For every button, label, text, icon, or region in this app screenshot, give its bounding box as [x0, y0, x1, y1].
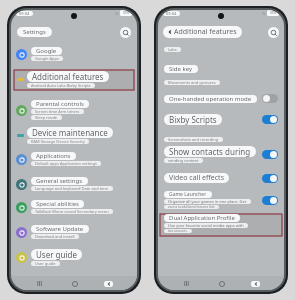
button[interactable]: Settings	[17, 27, 52, 37]
staticText: 09:04	[19, 11, 30, 16]
staticText: Video call effects	[169, 173, 224, 183]
button[interactable]: Switch on	[262, 115, 278, 124]
staticText: User guide	[36, 249, 77, 260]
button[interactable]: Switch off	[262, 94, 278, 103]
staticText: Settings	[23, 28, 46, 36]
button[interactable]: One-handed operation mode	[164, 94, 278, 103]
staticText: Movements and gestures	[168, 80, 216, 85]
staticText: 93%	[123, 11, 129, 15]
button[interactable]: Switch on	[262, 150, 278, 159]
button[interactable]: Switch on	[262, 174, 278, 183]
staticText: Language and keyboard Date and time	[35, 186, 109, 191]
staticText: Additional features	[32, 71, 104, 82]
staticText: 93%	[270, 11, 276, 15]
staticText: Android Auto Labs Bixby Scripts	[31, 83, 91, 88]
staticText: Side key	[169, 65, 193, 73]
staticText: %	[115, 11, 119, 16]
staticText: Default apps Application settings	[35, 161, 97, 166]
button[interactable]: Additional features	[163, 26, 242, 38]
staticText: Dual Application Profile	[169, 214, 235, 222]
staticText: Game Launcher	[169, 191, 207, 198]
staticText: 09:04	[166, 11, 177, 16]
staticText: General settings	[36, 177, 83, 185]
button[interactable]: Back	[249, 277, 262, 290]
staticText: Special abilities	[36, 200, 79, 208]
staticText: Labs	[168, 47, 177, 52]
button[interactable]: Additional features	[16, 71, 132, 88]
button[interactable]: User guide	[16, 249, 132, 266]
staticText: two accounts.	[168, 229, 188, 233]
staticText: Use your favorite social media apps with	[168, 223, 244, 228]
staticText: Device maintenance	[32, 127, 108, 138]
button[interactable]: Show contacts during	[164, 146, 278, 163]
button[interactable]: General settings	[16, 177, 132, 191]
staticText: TalkBack Mono sound Secondary menu	[35, 209, 109, 214]
button[interactable]: Search	[120, 27, 131, 38]
button[interactable]: Bixby Scripts	[164, 114, 278, 125]
button[interactable]: Software Update	[16, 225, 132, 239]
button[interactable]: Device maintenance	[16, 127, 132, 144]
staticText: User guide	[35, 261, 56, 266]
staticText: Additional features	[174, 27, 237, 37]
staticText: Bixby Scripts	[169, 114, 217, 125]
button[interactable]: Search	[268, 27, 279, 38]
staticText: One-handed operation mode	[169, 95, 252, 103]
button[interactable]: Movements and gestures	[164, 80, 278, 85]
button[interactable]: Back	[102, 277, 115, 290]
button[interactable]: Side key	[164, 65, 278, 73]
staticText: Sleep mode	[35, 115, 58, 120]
staticText: Show contacts during	[169, 146, 251, 157]
staticText: Parental controls	[36, 100, 84, 108]
button[interactable]: Special abilities	[16, 200, 132, 214]
button[interactable]: Applications	[16, 152, 132, 166]
staticText: access to additional features that	[168, 205, 215, 209]
staticText: Applications	[36, 152, 71, 160]
staticText: RAM Storage Device Security	[31, 139, 85, 144]
button[interactable]: Dual Application Profile	[164, 214, 278, 233]
button[interactable]: Labs	[164, 47, 278, 52]
button[interactable]: Recents	[180, 277, 193, 290]
staticText: Software Update	[36, 225, 84, 233]
staticText: Google	[36, 47, 57, 55]
staticText: Organize all your games in one place. Ge…	[168, 199, 247, 204]
staticText: %	[262, 11, 266, 16]
button[interactable]: Parental controls	[16, 100, 132, 120]
button[interactable]: Video call effects	[164, 173, 278, 183]
staticText: Google Apps	[35, 56, 59, 61]
button[interactable]: Game Launcher	[164, 191, 278, 209]
staticText: Download and install	[35, 234, 75, 239]
staticText: sending content	[168, 158, 199, 163]
button[interactable]: Switch on	[262, 196, 278, 205]
button[interactable]: Home	[215, 277, 228, 290]
button[interactable]: Google	[16, 47, 132, 61]
button[interactable]: Screenshots and recording	[164, 137, 278, 142]
staticText: Screenshots and recording	[168, 137, 219, 142]
button[interactable]: Recents	[33, 277, 46, 290]
button[interactable]: Home	[68, 277, 81, 290]
staticText: Screen time Arm timers	[35, 109, 80, 114]
